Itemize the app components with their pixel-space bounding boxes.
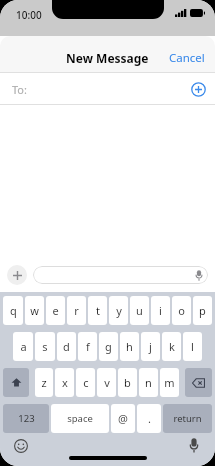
staticText: s bbox=[42, 339, 48, 354]
staticText: space bbox=[67, 412, 93, 425]
staticText: Cancel bbox=[169, 50, 205, 66]
button[interactable]: Backspace bbox=[185, 368, 212, 397]
button[interactable]: g bbox=[99, 332, 118, 361]
button[interactable]: r bbox=[67, 296, 86, 325]
button[interactable]: n bbox=[139, 368, 158, 397]
staticText: x bbox=[62, 375, 68, 390]
staticText: l bbox=[191, 339, 194, 354]
button[interactable]: @ bbox=[111, 404, 135, 433]
button[interactable]: o bbox=[172, 296, 191, 325]
staticText: h bbox=[126, 339, 133, 354]
other: Dictate bbox=[195, 270, 203, 281]
button[interactable]: u bbox=[130, 296, 149, 325]
staticText: . bbox=[148, 411, 151, 426]
staticText: m bbox=[164, 375, 175, 390]
button[interactable]: t bbox=[88, 296, 107, 325]
button[interactable]: m bbox=[160, 368, 179, 397]
button[interactable]: d bbox=[57, 332, 76, 361]
button[interactable]: Shift bbox=[3, 368, 29, 397]
staticText: t bbox=[96, 303, 100, 318]
button[interactable]: . bbox=[137, 404, 161, 433]
button[interactable]: y bbox=[109, 296, 128, 325]
button[interactable]: 123 bbox=[3, 404, 49, 433]
button[interactable]: c bbox=[76, 368, 95, 397]
button[interactable]: f bbox=[78, 332, 97, 361]
staticText: d bbox=[63, 339, 70, 354]
button[interactable]: return bbox=[163, 404, 212, 433]
button[interactable]: a bbox=[13, 332, 33, 361]
staticText: j bbox=[149, 339, 152, 354]
staticText: c bbox=[83, 375, 89, 390]
staticText: y bbox=[116, 303, 122, 318]
button[interactable]: s bbox=[35, 332, 55, 361]
button[interactable]: Add attachment bbox=[7, 265, 27, 285]
staticText: e bbox=[52, 303, 59, 318]
staticText: @ bbox=[118, 411, 128, 426]
staticText: w bbox=[30, 303, 39, 318]
button[interactable]: x bbox=[55, 368, 74, 397]
button[interactable]: Dictate bbox=[33, 266, 208, 284]
staticText: v bbox=[104, 375, 110, 390]
staticText: n bbox=[145, 375, 152, 390]
staticText: b bbox=[124, 375, 131, 390]
button[interactable]: space bbox=[51, 404, 109, 433]
staticText: u bbox=[136, 303, 143, 318]
button[interactable]: j bbox=[141, 332, 160, 361]
staticText: return bbox=[173, 412, 202, 425]
button[interactable]: b bbox=[118, 368, 137, 397]
button[interactable]: i bbox=[151, 296, 170, 325]
staticText: q bbox=[10, 303, 17, 318]
button[interactable]: e bbox=[46, 296, 65, 325]
staticText: p bbox=[199, 303, 206, 318]
staticText: f bbox=[86, 339, 90, 354]
staticText: o bbox=[178, 303, 185, 318]
button[interactable]: h bbox=[120, 332, 139, 361]
button[interactable]: k bbox=[162, 332, 181, 361]
button[interactable]: w bbox=[25, 296, 44, 325]
button[interactable]: q bbox=[3, 296, 23, 325]
staticText: k bbox=[169, 339, 175, 354]
staticText: g bbox=[105, 339, 112, 354]
staticText: 10:00 bbox=[16, 8, 42, 22]
button[interactable]: v bbox=[97, 368, 116, 397]
staticText: r bbox=[74, 303, 79, 318]
button[interactable]: Add contact bbox=[191, 82, 206, 97]
button[interactable]: To: bbox=[0, 73, 215, 105]
staticText: New Message bbox=[66, 50, 149, 66]
button[interactable]: p bbox=[193, 296, 212, 325]
staticText: To: bbox=[12, 82, 27, 97]
staticText: i bbox=[159, 303, 162, 318]
button[interactable]: z bbox=[35, 368, 53, 397]
button[interactable]: Cancel bbox=[159, 44, 215, 72]
button[interactable]: l bbox=[183, 332, 202, 361]
staticText: 123 bbox=[18, 412, 35, 425]
staticText: a bbox=[20, 339, 27, 354]
staticText: z bbox=[41, 375, 47, 390]
button[interactable]: Dictation bbox=[189, 438, 199, 453]
button[interactable]: Emoji bbox=[14, 439, 28, 453]
